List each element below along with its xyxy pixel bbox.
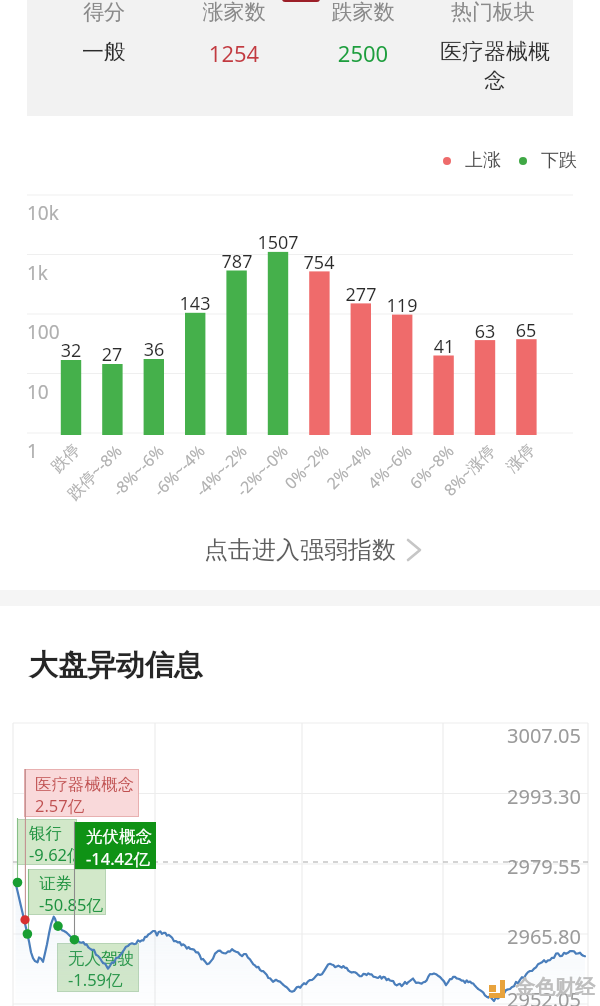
staticText: 一般 bbox=[0, 38, 264, 66]
staticText: -1.59亿 bbox=[68, 968, 123, 991]
staticText: 2965.80 bbox=[390, 923, 581, 950]
staticText: 念 bbox=[335, 67, 600, 95]
staticText: -2%~-0% bbox=[199, 440, 292, 533]
staticText: 1254 bbox=[74, 38, 394, 68]
staticText: 0%~2% bbox=[240, 440, 333, 533]
staticText: 医疗器械概 bbox=[335, 38, 600, 66]
staticText: 8%~涨停 bbox=[406, 440, 499, 533]
staticText: -50.85亿 bbox=[39, 893, 103, 916]
staticText: 点击进入强弱指数 bbox=[0, 535, 600, 565]
staticText: 277 bbox=[301, 282, 421, 307]
staticText: 涨家数 bbox=[74, 0, 394, 25]
staticText: -14.42亿 bbox=[86, 847, 150, 870]
button[interactable] bbox=[75, 822, 156, 869]
staticText: 4%~6% bbox=[323, 440, 416, 533]
button[interactable] bbox=[57, 943, 139, 992]
staticText: 热门板块 bbox=[333, 0, 600, 25]
staticText: 6%~8% bbox=[365, 440, 458, 533]
staticText: 涨停 bbox=[447, 440, 539, 532]
staticText: 10k bbox=[27, 200, 59, 226]
staticText: 65 bbox=[466, 318, 586, 343]
staticText: 1507 bbox=[218, 230, 338, 255]
staticText: 光伏概念 bbox=[86, 826, 152, 847]
staticText: 大盘异动信息 bbox=[29, 647, 203, 684]
staticText: 2993.30 bbox=[390, 783, 581, 810]
staticText: 得分 bbox=[0, 0, 264, 25]
button[interactable] bbox=[28, 869, 106, 915]
staticText: 银行 bbox=[29, 823, 62, 844]
staticText: -6%~-4% bbox=[116, 440, 209, 533]
staticText: 754 bbox=[259, 250, 379, 275]
staticText: 27 bbox=[52, 342, 172, 367]
other: 进入强弱指数 bbox=[406, 538, 430, 562]
staticText: 1 bbox=[27, 438, 38, 464]
staticText: 1k bbox=[27, 260, 49, 286]
staticText: 无人驾驶 bbox=[68, 948, 134, 969]
staticText: 2952.05 bbox=[390, 986, 581, 1006]
staticText: 787 bbox=[177, 249, 297, 274]
staticText: 跌停 bbox=[0, 440, 84, 532]
staticText: 跌停~-8% bbox=[33, 440, 126, 533]
staticText: 100 bbox=[27, 319, 60, 345]
button[interactable] bbox=[24, 769, 139, 817]
staticText: 2.57亿 bbox=[35, 794, 85, 817]
staticText: 63 bbox=[425, 319, 545, 344]
staticText: 36 bbox=[94, 337, 214, 362]
button[interactable]: 点击进入强弱指数 bbox=[0, 522, 600, 578]
staticText: -8%~-6% bbox=[75, 440, 168, 533]
staticText: 3007.05 bbox=[390, 722, 581, 749]
staticText: 上涨 bbox=[465, 149, 501, 172]
staticText: 2500 bbox=[203, 38, 523, 68]
staticText: 41 bbox=[384, 334, 504, 359]
staticText: 医疗器械概念 bbox=[35, 774, 134, 795]
staticText: -4%~-2% bbox=[158, 440, 251, 533]
staticText: 2%~4% bbox=[282, 440, 375, 533]
staticText: 10 bbox=[27, 379, 49, 405]
staticText: -9.62亿 bbox=[29, 843, 84, 866]
staticText: 32 bbox=[11, 338, 131, 363]
staticText: 跌家数 bbox=[203, 0, 523, 25]
staticText: 下跌 bbox=[541, 149, 577, 172]
staticText: 143 bbox=[135, 291, 255, 316]
staticText: 证券 bbox=[39, 873, 72, 894]
staticText: 金色财经 bbox=[515, 975, 595, 1000]
staticText: 119 bbox=[342, 293, 462, 318]
staticText: 2979.55 bbox=[390, 853, 581, 880]
button[interactable]: 上涨 bbox=[443, 149, 577, 172]
button[interactable] bbox=[17, 819, 77, 865]
